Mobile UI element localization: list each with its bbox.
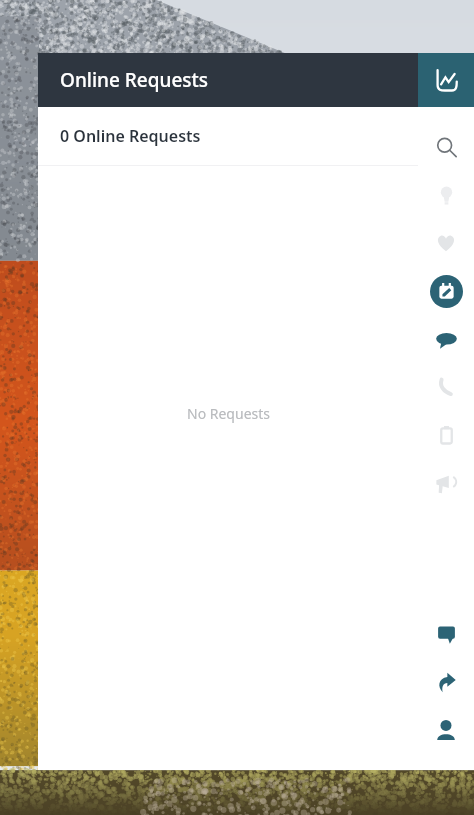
button[interactable]: Insights <box>418 171 474 219</box>
button[interactable]: Announcements <box>418 459 474 507</box>
staticText: 0 Online Requests <box>60 125 201 147</box>
button[interactable]: Share <box>418 658 474 706</box>
button[interactable]: Favorites <box>418 219 474 267</box>
button[interactable]: Feedback <box>418 610 474 658</box>
button[interactable]: Requests <box>418 267 474 315</box>
button[interactable]: Calls <box>418 363 474 411</box>
staticText: Online Requests <box>60 67 209 93</box>
button[interactable]: Online Requests <box>38 53 418 107</box>
button[interactable]: Dashboard <box>418 53 474 107</box>
button[interactable]: Search <box>418 123 474 171</box>
button[interactable]: Profile <box>418 706 474 754</box>
staticText: No Requests <box>187 404 270 423</box>
button[interactable]: Notes <box>418 411 474 459</box>
button[interactable]: Messages <box>418 315 474 363</box>
